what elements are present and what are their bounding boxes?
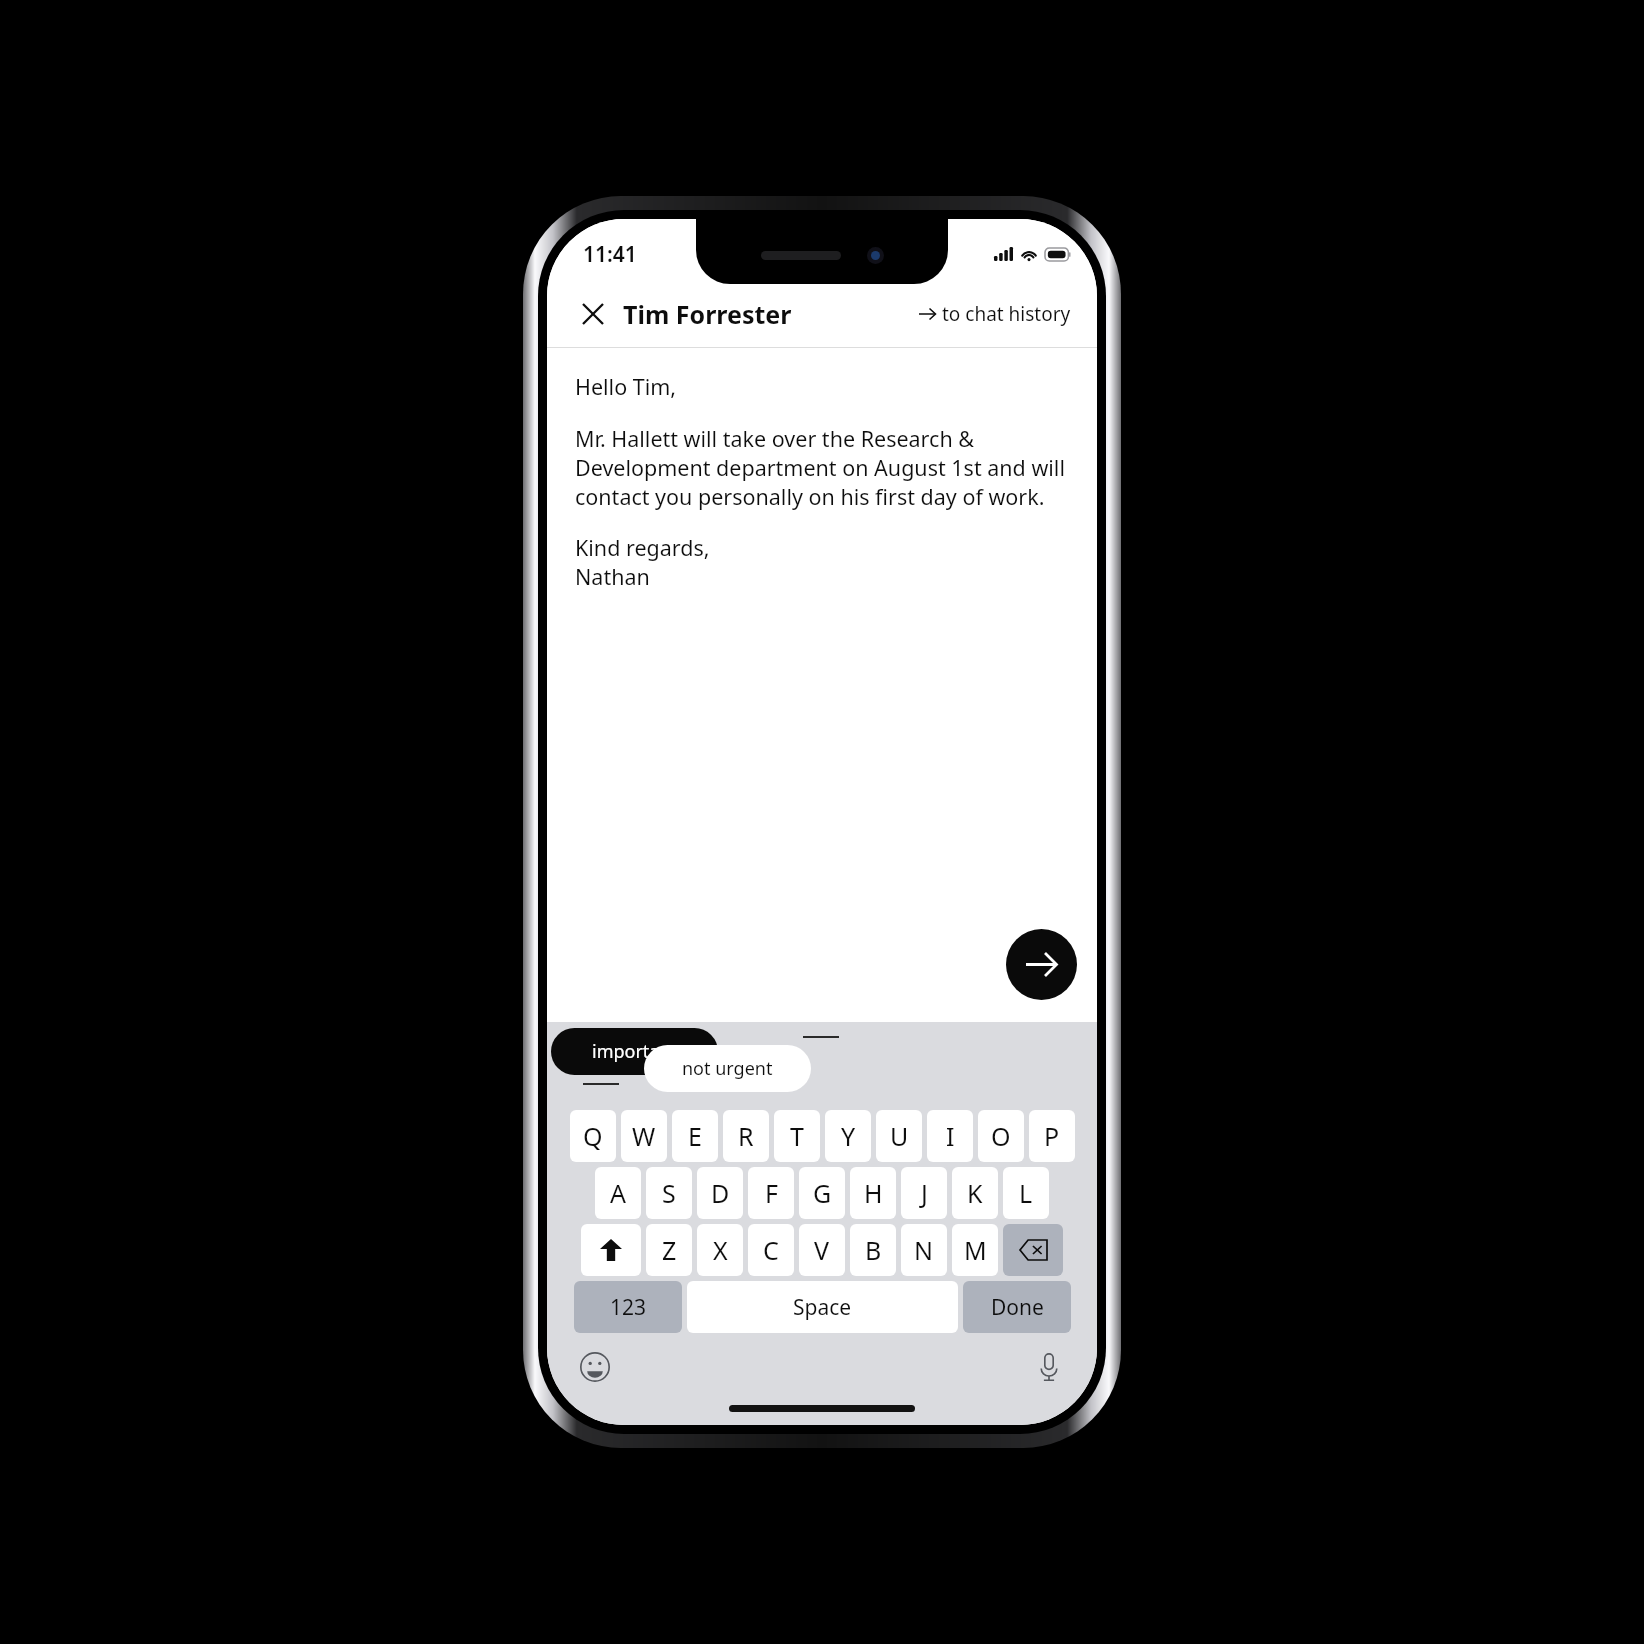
button[interactable]: L bbox=[1003, 1167, 1049, 1219]
button[interactable]: R bbox=[723, 1110, 769, 1162]
button[interactable]: Close bbox=[575, 296, 611, 332]
staticText: G bbox=[813, 1176, 832, 1210]
staticText: W bbox=[632, 1119, 656, 1153]
staticText: S bbox=[662, 1176, 676, 1210]
button[interactable]: H bbox=[850, 1167, 896, 1219]
button[interactable]: A bbox=[595, 1167, 641, 1219]
staticText: X bbox=[713, 1233, 728, 1267]
button[interactable]: Voice input bbox=[1029, 1347, 1069, 1387]
staticText: important bbox=[592, 1039, 678, 1064]
staticText: 123 bbox=[610, 1293, 647, 1322]
button[interactable]: Shift bbox=[581, 1224, 641, 1276]
staticText: B bbox=[865, 1233, 882, 1267]
button[interactable]: G bbox=[799, 1167, 845, 1219]
button[interactable]: 123 bbox=[574, 1281, 682, 1333]
button[interactable]: B bbox=[850, 1224, 896, 1276]
button[interactable]: not urgent bbox=[644, 1045, 811, 1092]
button[interactable]: Q bbox=[570, 1110, 616, 1162]
staticText: K bbox=[967, 1176, 983, 1210]
button[interactable]: Done bbox=[963, 1281, 1071, 1333]
staticText: C bbox=[763, 1233, 779, 1267]
staticText: to chat history bbox=[942, 301, 1071, 327]
staticText: H bbox=[864, 1176, 883, 1210]
staticText: Z bbox=[662, 1233, 677, 1267]
button[interactable]: Send bbox=[1006, 929, 1077, 1000]
staticText: Y bbox=[841, 1119, 856, 1153]
staticText: I bbox=[946, 1119, 955, 1153]
staticText: E bbox=[688, 1119, 702, 1153]
staticText: V bbox=[814, 1233, 830, 1267]
staticText: Hello Tim, bbox=[575, 372, 677, 401]
staticText: Done bbox=[991, 1293, 1044, 1322]
staticText: U bbox=[890, 1119, 909, 1153]
button[interactable]: Space bbox=[687, 1281, 958, 1333]
staticText: Kind regards, Nathan bbox=[575, 533, 710, 591]
button[interactable]: W bbox=[621, 1110, 667, 1162]
button[interactable]: S bbox=[646, 1167, 692, 1219]
button[interactable]: Backspace bbox=[1003, 1224, 1063, 1276]
staticText: Tim Forrester bbox=[623, 297, 792, 331]
button[interactable]: to chat history bbox=[915, 297, 1075, 331]
button[interactable]: M bbox=[952, 1224, 998, 1276]
button[interactable]: N bbox=[901, 1224, 947, 1276]
staticText: M bbox=[964, 1233, 987, 1267]
staticText: O bbox=[991, 1119, 1011, 1153]
button[interactable]: O bbox=[978, 1110, 1024, 1162]
staticText: Q bbox=[583, 1119, 603, 1153]
staticText: not urgent bbox=[682, 1056, 773, 1081]
staticText: A bbox=[610, 1176, 626, 1210]
staticText: D bbox=[711, 1176, 730, 1210]
button[interactable]: Y bbox=[825, 1110, 871, 1162]
button[interactable]: T bbox=[774, 1110, 820, 1162]
staticText: P bbox=[1044, 1119, 1060, 1153]
button[interactable]: U bbox=[876, 1110, 922, 1162]
button[interactable]: important bbox=[551, 1028, 718, 1075]
staticText: L bbox=[1019, 1176, 1033, 1210]
button[interactable]: K bbox=[952, 1167, 998, 1219]
button[interactable]: D bbox=[697, 1167, 743, 1219]
staticText: Space bbox=[793, 1293, 852, 1322]
button[interactable]: P bbox=[1029, 1110, 1075, 1162]
button[interactable]: I bbox=[927, 1110, 973, 1162]
button[interactable]: C bbox=[748, 1224, 794, 1276]
button[interactable]: X bbox=[697, 1224, 743, 1276]
staticText: N bbox=[914, 1233, 934, 1267]
button[interactable]: V bbox=[799, 1224, 845, 1276]
button[interactable]: E bbox=[672, 1110, 718, 1162]
staticText: F bbox=[765, 1176, 778, 1210]
staticText: T bbox=[790, 1119, 804, 1153]
staticText: 11:41 bbox=[583, 240, 637, 269]
button[interactable]: F bbox=[748, 1167, 794, 1219]
button[interactable]: Emoji bbox=[575, 1347, 615, 1387]
button[interactable]: Z bbox=[646, 1224, 692, 1276]
staticText: R bbox=[738, 1119, 754, 1153]
staticText: Mr. Hallett will take over the Research … bbox=[575, 424, 1071, 511]
button[interactable]: J bbox=[901, 1167, 947, 1219]
staticText: J bbox=[921, 1176, 928, 1210]
